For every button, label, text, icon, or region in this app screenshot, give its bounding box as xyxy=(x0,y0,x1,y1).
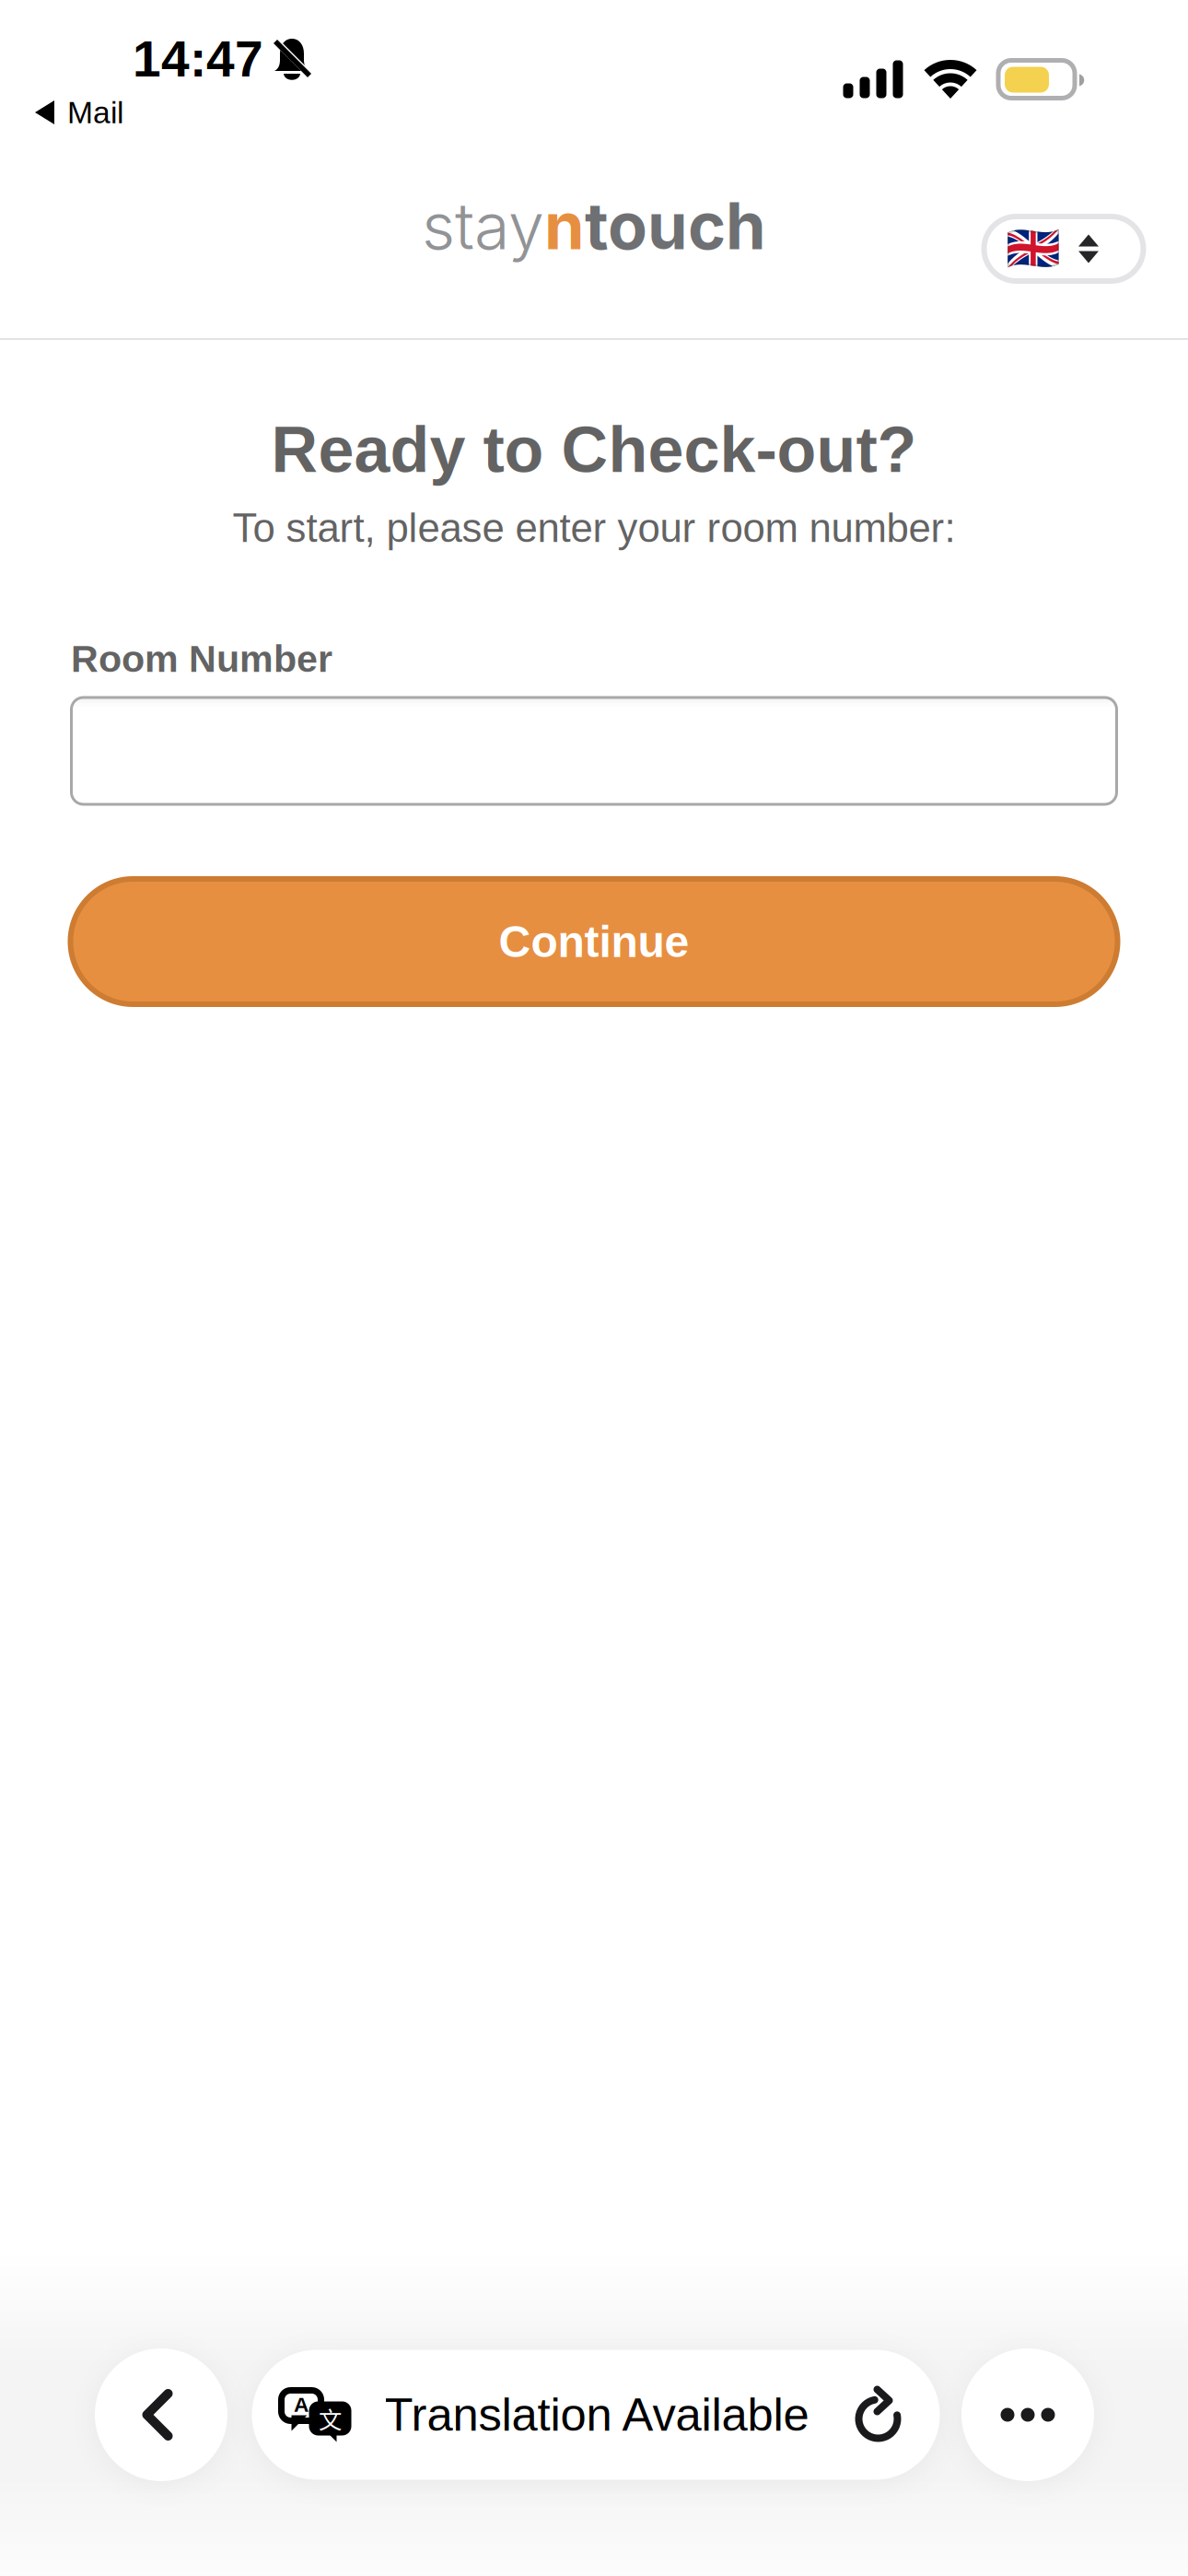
staticText: A xyxy=(294,2393,309,2416)
staticText: n xyxy=(544,187,585,265)
button[interactable]: Continue xyxy=(70,879,1118,1004)
staticText: 🇬🇧 xyxy=(1006,223,1061,275)
staticText: Continue xyxy=(499,917,689,966)
button[interactable]: A xyxy=(252,2350,940,2480)
staticText: Mail xyxy=(67,95,123,130)
staticText: Translation Available xyxy=(384,2389,809,2441)
staticText: 文 xyxy=(319,2402,342,2435)
staticText: 14:47 xyxy=(133,31,263,87)
staticText: Ready to Check-out? xyxy=(271,414,917,486)
staticText: touch xyxy=(585,187,766,265)
staticText: stay xyxy=(422,187,544,265)
staticText: To start, please enter your room number: xyxy=(233,505,955,550)
button[interactable]: Back xyxy=(95,2348,227,2481)
button[interactable]: Change language xyxy=(984,217,1143,281)
button[interactable]: More xyxy=(961,2348,1094,2481)
staticText: Room Number xyxy=(71,638,332,680)
button[interactable]: Mail xyxy=(35,88,146,136)
